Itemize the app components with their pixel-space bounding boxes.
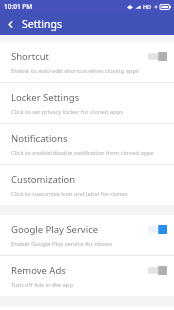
- staticText: Settings: [22, 17, 62, 31]
- staticText: Remove Ads: [11, 264, 148, 277]
- button[interactable]: Locker Settings: [0, 83, 174, 124]
- staticText: Notifications: [11, 132, 167, 145]
- staticText: 10:01 PM: [4, 2, 33, 11]
- staticText: Enable to auto-add shortcut when closing…: [11, 67, 139, 75]
- staticText: HD: [143, 3, 152, 10]
- staticText: Click to enable/disable notification fro…: [11, 149, 154, 157]
- button[interactable]: Remove Ads: [0, 256, 174, 296]
- button[interactable]: Google Play Service: [0, 215, 174, 256]
- staticText: Locker Settings: [11, 91, 167, 104]
- staticText: Click to set privacy locker for cloned a…: [11, 108, 124, 116]
- staticText: Customization: [11, 173, 167, 186]
- staticText: Shortcut: [11, 50, 148, 63]
- staticText: Google Play Service: [11, 223, 148, 236]
- staticText: Click to customize icon and label for cl…: [11, 190, 128, 198]
- staticText: Turn off Ads in the app: [11, 281, 73, 289]
- button[interactable]: Customization: [0, 165, 174, 205]
- staticText: Enable Google Play service for clones: [11, 240, 112, 248]
- button[interactable]: Shortcut: [0, 42, 174, 83]
- button[interactable]: Back: [0, 14, 20, 34]
- button[interactable]: Notifications: [0, 124, 174, 165]
